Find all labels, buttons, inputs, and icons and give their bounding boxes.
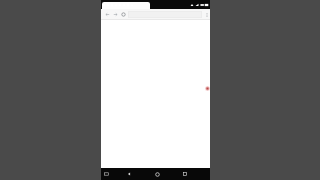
button[interactable]: Reload xyxy=(119,9,127,20)
button[interactable]: Back xyxy=(103,9,111,20)
button[interactable]: Back xyxy=(120,168,138,180)
button[interactable]: Current tab xyxy=(102,2,150,9)
button[interactable]: More options xyxy=(203,9,210,20)
button[interactable]: Recent apps xyxy=(176,168,194,180)
button[interactable]: Home xyxy=(148,168,166,180)
button[interactable]: Hide keyboard xyxy=(101,168,111,180)
button[interactable]: Forward xyxy=(111,9,119,20)
